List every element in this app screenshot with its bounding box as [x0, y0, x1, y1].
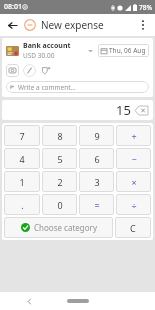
button[interactable]: Back	[4, 17, 20, 33]
staticText: 78%	[139, 3, 152, 12]
button[interactable]: .	[4, 194, 40, 215]
staticText: Bank account	[23, 41, 71, 51]
staticText: 15	[116, 101, 131, 119]
button[interactable]: Bank account	[6, 41, 94, 60]
staticText: ×	[131, 176, 137, 188]
button[interactable]: +	[116, 125, 151, 146]
button[interactable]: Write a comment...	[6, 81, 149, 93]
button[interactable]: 9	[79, 125, 114, 146]
button[interactable]: =	[79, 194, 114, 215]
staticText: USD 30.00	[23, 51, 55, 60]
button[interactable]: Backspace	[135, 106, 148, 115]
button[interactable]: Add tag	[40, 64, 53, 77]
staticText: .	[21, 199, 24, 211]
staticText: 9	[94, 130, 100, 142]
staticText: New expense	[41, 18, 104, 32]
staticText: +	[131, 130, 137, 142]
button[interactable]: C	[115, 217, 151, 238]
staticText: 4	[19, 153, 25, 165]
button[interactable]: 3	[79, 171, 114, 192]
staticText: 08:01	[4, 2, 22, 12]
button[interactable]: ×	[116, 171, 151, 192]
button[interactable]: 1	[4, 171, 40, 192]
staticText: 3	[94, 176, 100, 188]
staticText: Thu, 06 Aug	[109, 46, 146, 55]
button[interactable]: Back	[24, 296, 34, 306]
button[interactable]: 7	[4, 125, 40, 146]
button[interactable]: 8	[42, 125, 77, 146]
staticText: −	[131, 153, 137, 165]
button[interactable]: More options	[135, 17, 151, 33]
button[interactable]: ÷	[116, 194, 151, 215]
button[interactable]: 0	[42, 194, 77, 215]
staticText: C	[130, 222, 136, 234]
staticText: 5	[57, 153, 63, 165]
staticText: 2	[57, 176, 63, 188]
button[interactable]: Attach file	[23, 64, 36, 77]
button[interactable]: Choose category	[4, 217, 113, 238]
button[interactable]: Thu, 06 Aug	[98, 44, 149, 57]
button[interactable]: 6	[79, 148, 114, 169]
button[interactable]: 5	[42, 148, 77, 169]
staticText: 8	[57, 130, 63, 142]
button[interactable]: 2	[42, 171, 77, 192]
staticText: 0	[57, 199, 63, 211]
staticText: Write a comment...	[18, 83, 76, 92]
staticText: 7	[19, 130, 25, 142]
button[interactable]: Take photo	[6, 64, 19, 77]
staticText: Choose category	[34, 222, 97, 233]
staticText: =	[94, 199, 100, 211]
button[interactable]: Expense type	[24, 19, 36, 31]
button[interactable]: 15	[2, 100, 153, 120]
button[interactable]: −	[116, 148, 151, 169]
button[interactable]: Home	[67, 299, 89, 303]
staticText: ÷	[131, 199, 137, 211]
button[interactable]: 4	[4, 148, 40, 169]
staticText: 1	[19, 176, 25, 188]
staticText: 6	[94, 153, 100, 165]
